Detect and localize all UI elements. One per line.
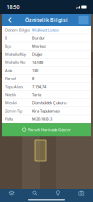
staticText: Parseli Haritada Göster: [28, 127, 71, 132]
button[interactable]: Photo: [70, 191, 93, 196]
staticText: 18:50: [6, 3, 19, 11]
staticText: Ada: [5, 68, 12, 73]
button[interactable]: Back: [4, 14, 15, 26]
button[interactable]: Map options: [78, 16, 88, 24]
staticText: Nitelik: [5, 92, 16, 97]
staticText: Dönem Bilgisi: [5, 27, 30, 32]
staticText: Dümbüldek Çukuru: [32, 100, 66, 105]
button[interactable]: My location: [46, 190, 70, 196]
staticText: M20-18-B-3: [32, 116, 52, 122]
staticText: Öznitelik Bilgisi: [25, 16, 68, 24]
staticText: İlçe: [5, 43, 11, 49]
staticText: İl: [5, 35, 7, 41]
staticText: Burdur: [32, 35, 45, 41]
staticText: Mahalle/Köy: [5, 51, 26, 57]
staticText: Merkez: [32, 43, 46, 49]
staticText: 7.194,74: [32, 84, 46, 89]
staticText: 147/48: [32, 60, 43, 65]
staticText: Parsel: [5, 76, 16, 81]
button[interactable]: Search: [23, 191, 46, 195]
button[interactable]: Layers: [0, 191, 23, 195]
staticText: 130: [32, 68, 38, 73]
staticText: Mülkiyet Listesi: [32, 27, 59, 32]
staticText: Düğer: [32, 51, 43, 57]
staticText: Zemin Tip: [5, 108, 22, 113]
staticText: Mevkii: [5, 100, 17, 105]
staticText: Mahalle No: [5, 60, 25, 65]
staticText: Kira Tapulaması: [32, 108, 60, 113]
staticText: 8: [32, 76, 34, 81]
staticText: Tapu Alanı: [5, 84, 23, 89]
button[interactable]: Parseli Haritada Göster: [2, 123, 91, 136]
staticText: Pafta: [5, 116, 13, 122]
staticText: Tarla: [32, 92, 41, 97]
